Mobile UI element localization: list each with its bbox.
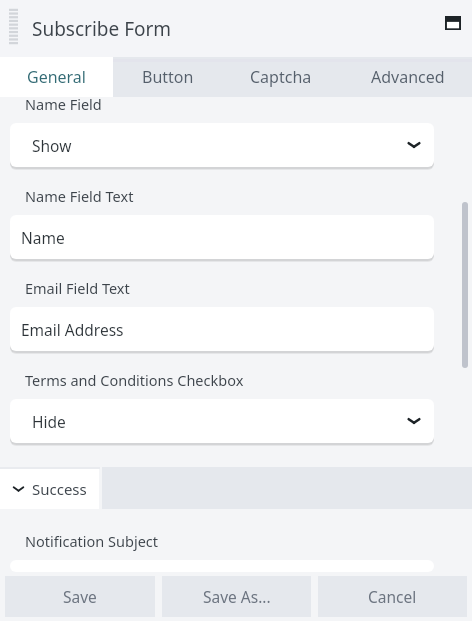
button[interactable]: Name [10,215,434,259]
other: Drag handle [9,8,18,45]
staticText: Email Field Text [25,278,130,298]
button[interactable]: Show [10,123,434,167]
button[interactable]: Email Address [10,307,434,351]
staticText: Advanced [371,66,445,88]
button[interactable]: Advanced [338,57,472,97]
staticText: Captcha [250,66,312,88]
staticText: Terms and Conditions Checkbox [25,370,244,390]
button[interactable]: Captcha [223,57,338,97]
button[interactable]: Cancel [318,576,467,617]
button[interactable]: Save As... [162,576,311,617]
staticText: Success [32,479,87,499]
button[interactable]: Success [0,469,99,509]
staticText: Subscribe Form [32,16,172,42]
staticText: Notification Subject [25,531,159,551]
staticText: Save As... [203,586,271,607]
staticText: Save [63,586,97,607]
staticText: Button [142,66,194,88]
staticText: Name [21,227,65,248]
button[interactable]: Dock panel [441,12,465,34]
staticText: Name Field Text [25,186,134,206]
button[interactable]: Save [5,576,155,617]
staticText: Show [32,135,72,156]
staticText: General [27,66,86,88]
staticText: Hide [32,411,66,432]
button[interactable]: Hide [10,399,434,443]
staticText: Cancel [368,586,417,607]
button[interactable]: General [0,57,113,97]
button[interactable]: Button [113,57,223,97]
staticText: Email Address [21,319,124,340]
staticText: Name Field [25,94,102,114]
